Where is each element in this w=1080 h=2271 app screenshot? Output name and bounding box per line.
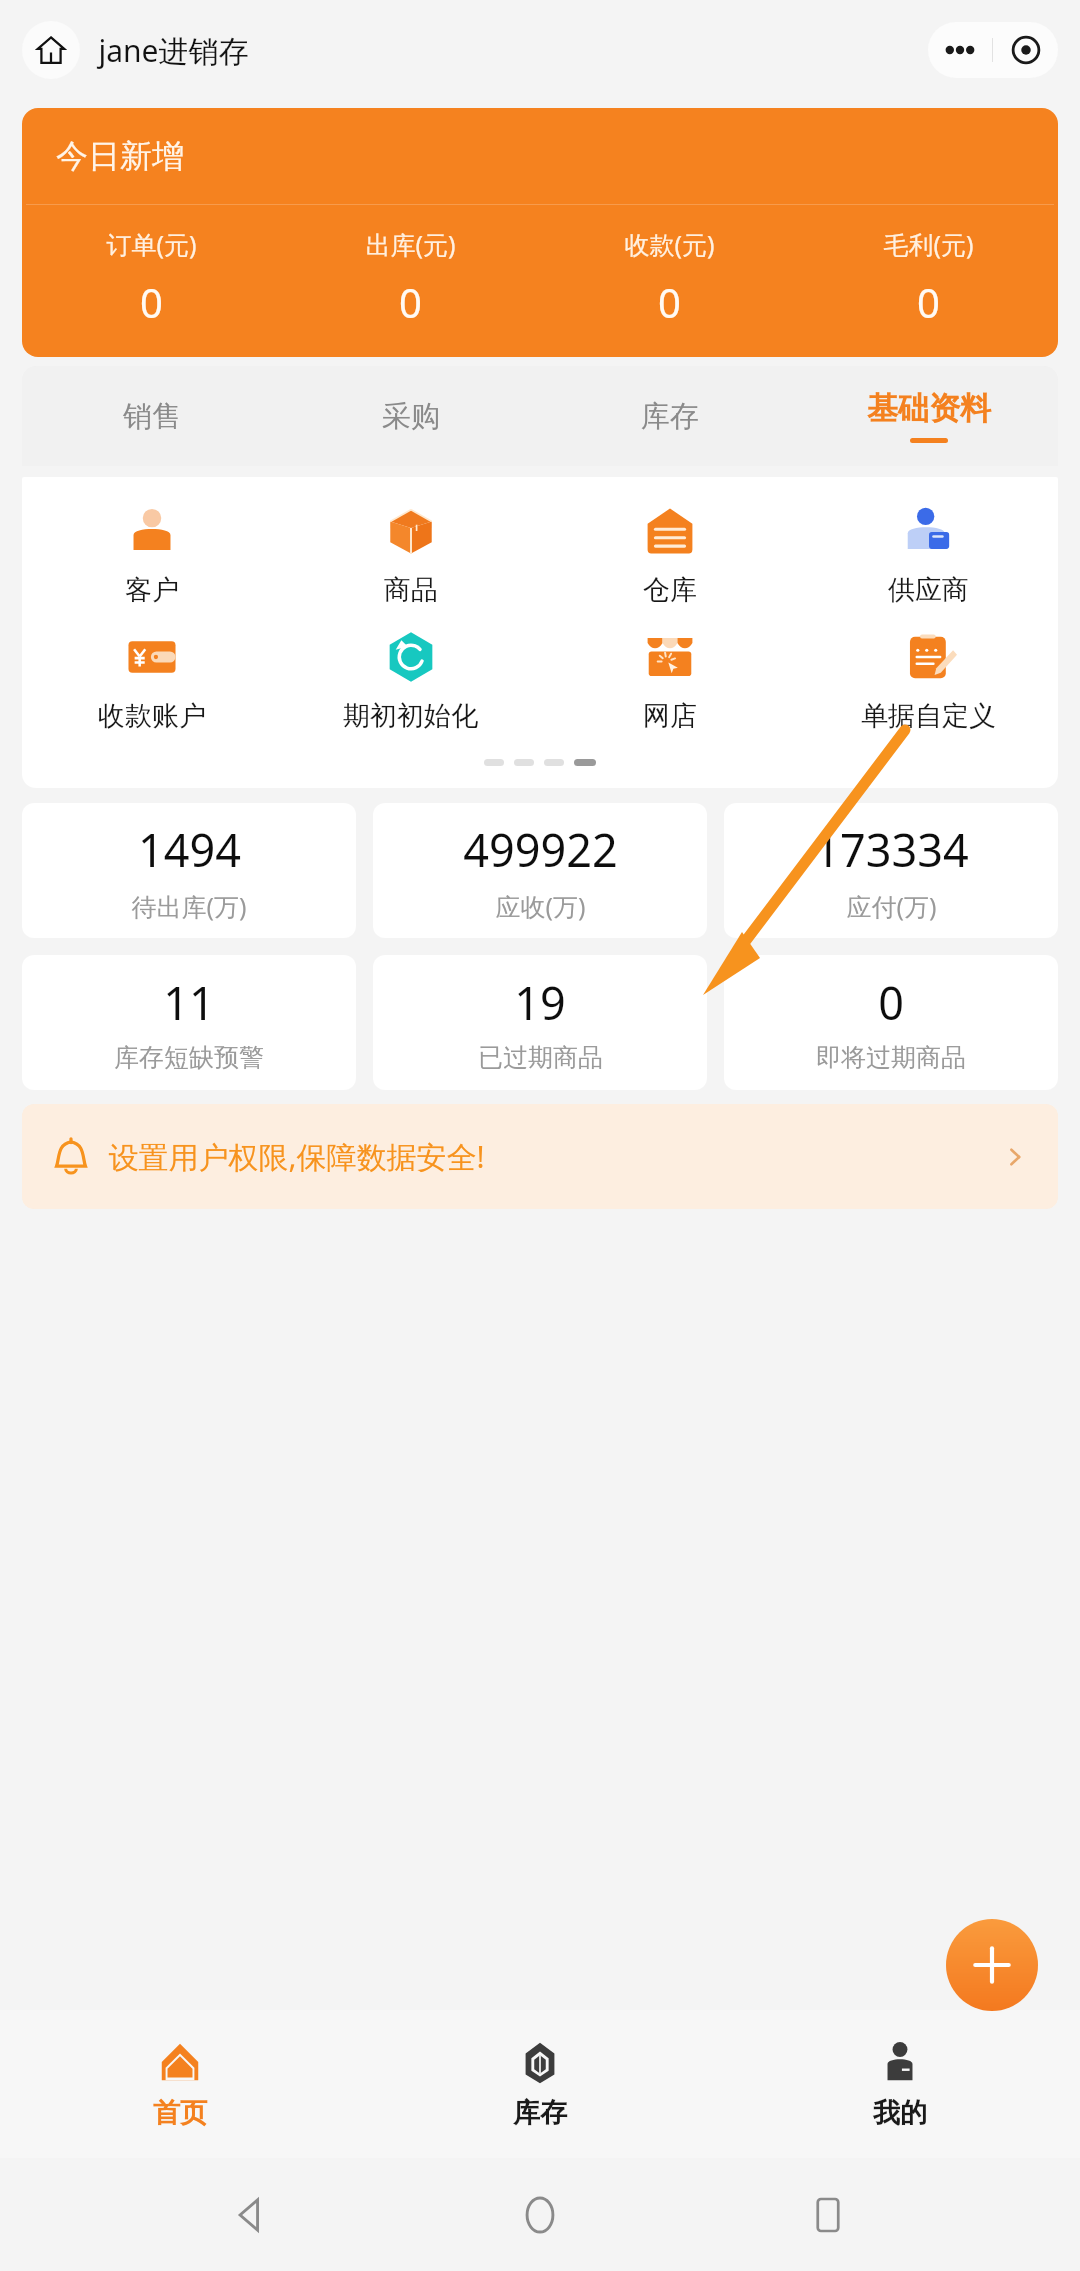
button[interactable]: 商品 bbox=[281, 503, 540, 607]
staticText: 今日新增 bbox=[56, 136, 184, 176]
button[interactable]: 499922 bbox=[373, 803, 707, 938]
button[interactable]: 主页 bbox=[505, 2180, 575, 2250]
staticText: 11 bbox=[163, 972, 215, 1033]
button[interactable]: 今日新增 bbox=[22, 108, 1058, 357]
button[interactable]: 0 bbox=[724, 955, 1058, 1090]
button[interactable]: 关闭 bbox=[993, 22, 1058, 78]
staticText: 0 bbox=[658, 275, 681, 329]
staticText: 499922 bbox=[463, 819, 618, 880]
staticText: 客户 bbox=[125, 573, 179, 607]
button[interactable]: 首页 bbox=[22, 21, 80, 79]
staticText: 订单(元) bbox=[106, 227, 197, 261]
staticText: 供应商 bbox=[888, 573, 969, 607]
button[interactable]: 基础资料 bbox=[799, 366, 1058, 466]
staticText: 网店 bbox=[643, 699, 697, 733]
staticText: 即将过期商品 bbox=[816, 1042, 966, 1073]
button[interactable]: 返回 bbox=[218, 2180, 288, 2250]
staticText: 销售 bbox=[123, 398, 181, 435]
button[interactable]: 期初初始化 bbox=[281, 629, 540, 733]
staticText: 仓库 bbox=[643, 573, 697, 607]
staticText: 期初初始化 bbox=[343, 699, 478, 733]
button[interactable]: 11 bbox=[22, 955, 356, 1090]
staticText: 待出库(万) bbox=[131, 889, 247, 923]
staticText: 首页 bbox=[153, 2096, 207, 2130]
button[interactable]: 仓库 bbox=[540, 503, 799, 607]
staticText: 设置用户权限,保障数据安全! bbox=[108, 1136, 485, 1177]
button[interactable]: 库存 bbox=[360, 2010, 720, 2158]
staticText: 库存短缺预警 bbox=[114, 1042, 264, 1073]
staticText: 应收(万) bbox=[495, 889, 586, 923]
staticText: 商品 bbox=[384, 573, 438, 607]
staticText: 应付(万) bbox=[846, 889, 937, 923]
staticText: 收款(元) bbox=[624, 227, 715, 261]
staticText: 基础资料 bbox=[867, 389, 991, 428]
button[interactable]: 更多 bbox=[928, 22, 992, 78]
staticText: 已过期商品 bbox=[478, 1042, 603, 1073]
staticText: 0 bbox=[140, 275, 163, 329]
button[interactable]: 库存 bbox=[540, 366, 799, 466]
button[interactable]: 网店 bbox=[540, 629, 799, 733]
button[interactable]: 最近任务 bbox=[793, 2180, 863, 2250]
staticText: 0 bbox=[878, 972, 904, 1033]
staticText: jane进销存 bbox=[98, 30, 249, 71]
button[interactable]: 19 bbox=[373, 955, 707, 1090]
button[interactable]: 采购 bbox=[281, 366, 540, 466]
button[interactable]: 单据自定义 bbox=[799, 629, 1058, 733]
button[interactable]: 客户 bbox=[22, 503, 281, 607]
button[interactable]: 新增 bbox=[946, 1919, 1038, 2011]
staticText: 0 bbox=[917, 275, 940, 329]
button[interactable]: 销售 bbox=[22, 366, 281, 466]
button[interactable]: 收款账户 bbox=[22, 629, 281, 733]
staticText: 0 bbox=[399, 275, 422, 329]
staticText: 库存 bbox=[513, 2096, 567, 2130]
button[interactable]: 供应商 bbox=[799, 503, 1058, 607]
button[interactable]: 1494 bbox=[22, 803, 356, 938]
staticText: 173334 bbox=[814, 819, 969, 880]
button[interactable]: 设置用户权限,保障数据安全! bbox=[22, 1104, 1058, 1209]
staticText: 我的 bbox=[873, 2096, 927, 2130]
staticText: 出库(元) bbox=[365, 227, 456, 261]
staticText: 单据自定义 bbox=[861, 699, 996, 733]
staticText: 1494 bbox=[138, 819, 241, 880]
staticText: 库存 bbox=[641, 398, 699, 435]
button[interactable]: 首页 bbox=[0, 2010, 360, 2158]
staticText: 采购 bbox=[382, 398, 440, 435]
button[interactable]: 173334 bbox=[724, 803, 1058, 938]
staticText: 毛利(元) bbox=[883, 227, 974, 261]
staticText: 19 bbox=[514, 972, 566, 1033]
staticText: 收款账户 bbox=[98, 699, 206, 733]
button[interactable]: 我的 bbox=[720, 2010, 1080, 2158]
